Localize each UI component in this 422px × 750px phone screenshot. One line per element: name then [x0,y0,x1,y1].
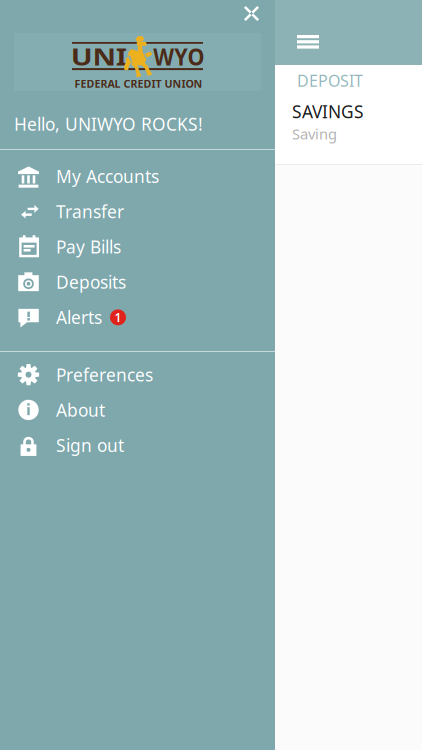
staticText: Preferences [56,363,153,386]
staticText: Deposits [56,270,126,293]
staticText: FEDERAL CREDIT UNION [74,76,202,91]
button[interactable]: Alerts [0,300,275,335]
button[interactable]: Open navigation menu [283,20,333,64]
button[interactable]: Transfer [0,194,275,229]
staticText: Alerts [56,306,102,329]
staticText: UNI [77,42,121,72]
staticText: Transfer [56,200,124,223]
button[interactable]: Preferences [0,357,275,392]
staticText: Sign out [56,434,124,457]
button[interactable]: Pay Bills [0,229,275,264]
button[interactable]: Sign out [0,428,275,463]
button[interactable]: About [0,392,275,428]
staticText: SAVINGS [292,100,364,123]
staticText: DEPOSIT [297,70,363,91]
staticText: 1 [114,309,121,325]
staticText: Saving [292,124,337,143]
staticText: WYO [152,42,206,72]
button[interactable]: Close menu [234,0,269,27]
staticText: My Accounts [56,165,159,188]
staticText: Hello, UNIWYO ROCKS! [14,112,203,135]
button[interactable]: Deposits [0,264,275,300]
button[interactable]: My Accounts [0,158,275,194]
staticText: About [56,398,105,421]
button[interactable]: SAVINGS [0,96,422,156]
staticText: Pay Bills [56,235,121,258]
